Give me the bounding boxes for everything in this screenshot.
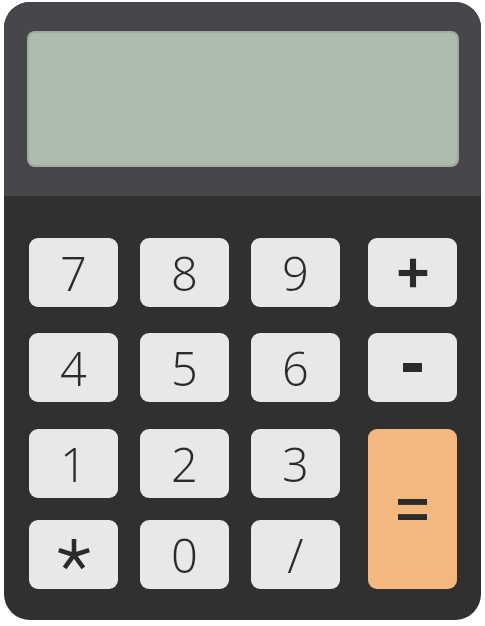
staticText: 6 (282, 336, 309, 400)
staticText: 4 (60, 336, 87, 400)
staticText: 0 (171, 523, 198, 587)
button[interactable]: 3 (251, 429, 340, 498)
staticText: 9 (282, 241, 309, 305)
staticText: 2 (171, 432, 198, 496)
staticText: 1 (60, 432, 87, 496)
staticText: / (287, 523, 304, 587)
staticText: 7 (60, 241, 87, 305)
staticText: 8 (171, 241, 198, 305)
button[interactable]: 2 (140, 429, 229, 498)
button[interactable]: Equals (368, 429, 457, 589)
button[interactable]: 4 (29, 333, 118, 402)
button[interactable]: Minus (368, 333, 457, 402)
button[interactable]: 9 (251, 238, 340, 307)
button[interactable]: 1 (29, 429, 118, 498)
button[interactable]: 0 (140, 520, 229, 589)
button[interactable]: Multiply (29, 520, 118, 589)
staticText: 5 (171, 336, 198, 400)
button[interactable]: Plus (368, 238, 457, 307)
staticText: 3 (282, 432, 309, 496)
button[interactable]: 5 (140, 333, 229, 402)
button[interactable]: 7 (29, 238, 118, 307)
button[interactable]: 8 (140, 238, 229, 307)
button[interactable]: 6 (251, 333, 340, 402)
button[interactable] (27, 31, 459, 167)
button[interactable]: / (251, 520, 340, 589)
